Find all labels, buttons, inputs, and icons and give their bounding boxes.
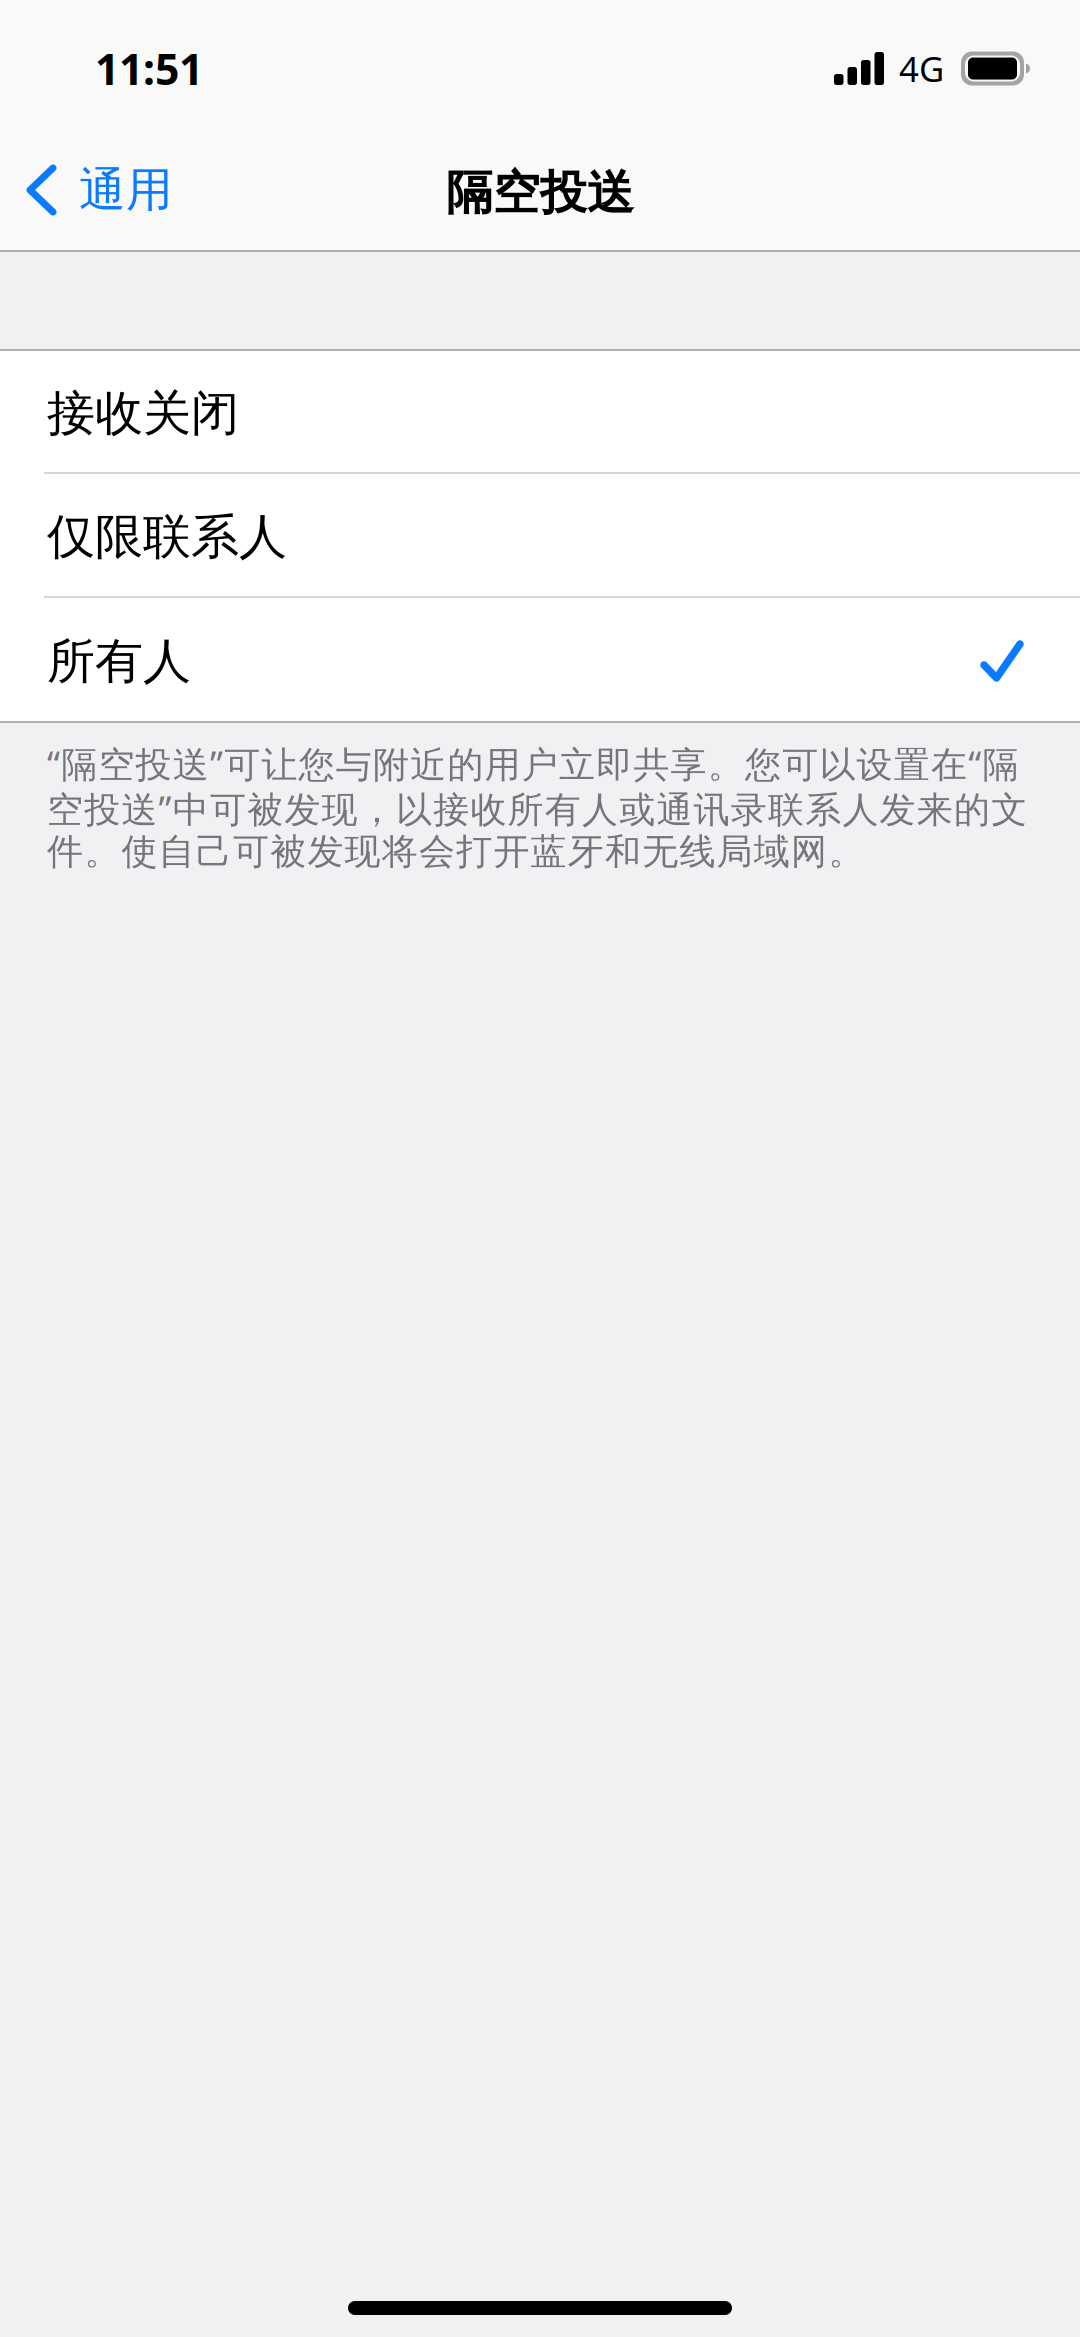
staticText: 4G [899,45,944,92]
staticText: 隔空投送 [446,164,634,222]
button[interactable]: 仅限联系人 [0,474,1080,596]
staticText: “隔空投送”可让您与附近的用户立即共享。您可以设置在“隔空投送”中可被发现，以接… [47,739,1056,874]
staticText: 仅限联系人 [47,507,287,567]
button[interactable]: 接收关闭 [0,351,1080,472]
staticText: 所有人 [47,631,191,692]
button[interactable]: 返回 通用 [0,130,199,250]
button[interactable]: 所有人 [0,598,1080,721]
staticText: 接收关闭 [47,383,239,444]
staticText: 通用 [79,161,173,219]
staticText: 11:51 [95,39,203,97]
